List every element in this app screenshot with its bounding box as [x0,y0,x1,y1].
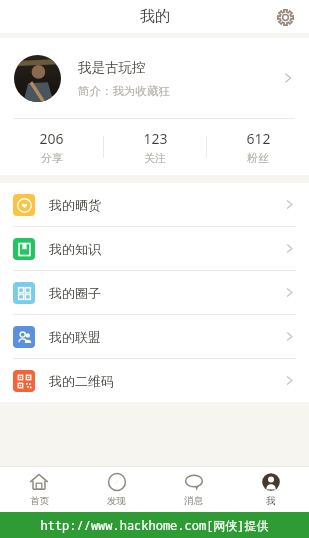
button[interactable]: 我的知识 [0,227,309,270]
button[interactable]: 发现 [78,467,155,512]
button[interactable]: 我的晒货 [0,183,309,226]
staticText: 发现 [107,495,126,507]
staticText: 关注 [144,151,166,165]
button[interactable]: 我是古玩控 [0,38,309,118]
staticText: 我的 [140,7,170,26]
staticText: http://www.hackhome.com[网侠]提供 [40,517,269,533]
staticText: 我的圈子 [49,285,283,301]
button[interactable]: 我 [232,467,309,512]
button[interactable]: 首页 [0,467,78,512]
button[interactable]: 我的联盟 [0,315,309,358]
staticText: 我的知识 [49,241,283,257]
staticText: 我 [266,495,276,507]
staticText: 我的晒货 [49,197,283,213]
staticText: 我的二维码 [49,373,283,389]
staticText: 粉丝 [247,151,269,165]
staticText: 消息 [184,495,203,507]
button[interactable]: 206 [0,119,103,175]
button[interactable]: 我的圈子 [0,271,309,314]
button[interactable]: Settings [271,3,299,31]
staticText: 分享 [41,151,63,165]
staticText: 206 [39,129,64,148]
button[interactable]: 消息 [155,467,232,512]
staticText: 首页 [30,495,49,507]
staticText: 我是古玩控 [78,59,146,76]
button[interactable]: 612 [207,119,309,175]
button[interactable]: 123 [104,119,206,175]
button[interactable]: 我的二维码 [0,359,309,402]
staticText: 我的联盟 [49,329,283,345]
staticText: 简介：我为收藏狂 [78,84,170,98]
staticText: 123 [143,129,168,148]
staticText: 612 [246,129,271,148]
